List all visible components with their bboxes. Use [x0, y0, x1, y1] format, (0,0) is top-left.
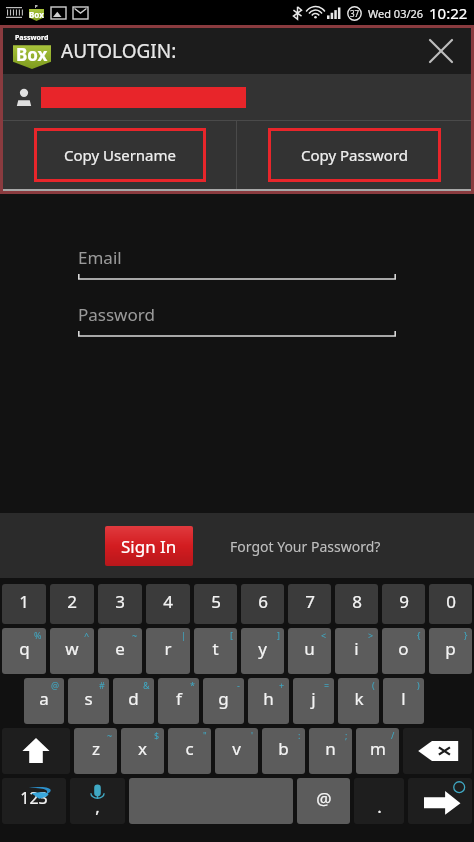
button[interactable]: Sign In — [105, 526, 193, 566]
staticText: f — [176, 687, 182, 710]
button[interactable]: 2 — [50, 584, 94, 624]
staticText: l — [401, 687, 406, 710]
staticText: y — [258, 637, 267, 660]
staticText: u — [304, 637, 315, 660]
button[interactable]: + — [248, 678, 289, 724]
button[interactable]: $ — [121, 728, 164, 774]
button[interactable]: Password — [3, 28, 471, 74]
staticText: 0 — [446, 590, 456, 613]
staticText: # — [99, 679, 105, 691]
staticText: } — [464, 629, 468, 641]
button[interactable]: < — [288, 628, 331, 674]
button[interactable]: & — [113, 678, 154, 724]
button[interactable]: - — [203, 678, 244, 724]
staticText: ] — [277, 629, 280, 641]
button[interactable]: 4 — [146, 584, 190, 624]
staticText: 4 — [163, 590, 173, 613]
staticText: ~ — [132, 629, 138, 641]
button[interactable]: " — [168, 728, 211, 774]
button[interactable]: @ — [24, 678, 64, 724]
staticText: < — [321, 629, 327, 641]
staticText: 123 — [20, 787, 48, 809]
staticText: Box — [29, 9, 44, 20]
button[interactable]: # — [68, 678, 109, 724]
button[interactable]: ( — [338, 678, 379, 724]
button[interactable]: | — [146, 628, 190, 674]
button[interactable]: 3 — [98, 584, 142, 624]
button[interactable]: / — [356, 728, 399, 774]
button[interactable]: > — [335, 628, 378, 674]
staticText: 6 — [258, 590, 268, 613]
staticText: b — [278, 737, 289, 760]
staticText: w — [65, 637, 79, 660]
staticText: 7 — [305, 590, 315, 613]
button[interactable]: Copy Password — [237, 121, 471, 189]
staticText: . — [377, 795, 382, 818]
button[interactable]: 9 — [382, 584, 425, 624]
staticText: 8 — [352, 590, 362, 613]
button[interactable]: 6 — [241, 584, 284, 624]
button[interactable]: ~ — [74, 728, 117, 774]
staticText: c — [185, 737, 194, 760]
button[interactable]: 0 — [429, 584, 472, 624]
staticText: Copy Password — [301, 145, 408, 165]
button[interactable]: [ — [194, 628, 237, 674]
button[interactable]: back — [403, 728, 472, 774]
button[interactable]: shift — [2, 728, 70, 774]
staticText: 5 — [211, 590, 221, 613]
button[interactable]: ] — [241, 628, 284, 674]
staticText: h — [263, 687, 274, 710]
button[interactable] — [3, 74, 471, 120]
staticText: ^ — [84, 629, 90, 641]
staticText: Password — [15, 33, 49, 43]
staticText: | — [181, 629, 186, 641]
staticText: { — [417, 629, 421, 641]
button[interactable]: Forgot Your Password? — [226, 533, 385, 560]
button[interactable]: ' — [215, 728, 258, 774]
button[interactable]: = — [293, 678, 334, 724]
staticText: o — [398, 637, 409, 660]
button[interactable]: 1 — [2, 584, 46, 624]
button[interactable]: . — [354, 778, 404, 824]
button[interactable]: % — [2, 628, 46, 674]
button[interactable]: 123 — [2, 778, 66, 824]
button[interactable]: * — [158, 678, 199, 724]
staticText: z — [92, 737, 100, 760]
staticText: 9 — [399, 590, 409, 613]
button[interactable]: , — [70, 778, 125, 824]
staticText: 37 — [350, 8, 360, 19]
button[interactable]: : — [262, 728, 305, 774]
staticText: AUTOLOGIN: — [61, 38, 177, 64]
staticText: p — [445, 637, 456, 660]
staticText: g — [218, 687, 229, 710]
staticText: n — [325, 737, 336, 760]
button[interactable]: ^ — [50, 628, 94, 674]
button[interactable]: ) — [383, 678, 424, 724]
staticText: k — [354, 687, 364, 710]
staticText: 10:22 — [429, 3, 468, 23]
staticText: x — [138, 737, 147, 760]
staticText: : — [298, 729, 301, 741]
staticText: i — [354, 637, 359, 660]
staticText: v — [232, 737, 241, 760]
staticText: ' — [251, 729, 254, 741]
button[interactable]: 5 — [194, 584, 237, 624]
button[interactable]: Copy Username — [3, 121, 236, 189]
staticText: q — [19, 637, 30, 660]
button[interactable]: @ — [297, 778, 350, 824]
button[interactable]: ~ — [98, 628, 142, 674]
staticText: Copy Username — [64, 145, 177, 165]
button[interactable]: } — [429, 628, 472, 674]
button[interactable]: ; — [309, 728, 352, 774]
staticText: P — [35, 4, 38, 9]
staticText: a — [39, 687, 49, 710]
button[interactable]: enter — [408, 778, 472, 824]
button[interactable]: { — [382, 628, 425, 674]
staticText: d — [128, 687, 139, 710]
staticText: " — [203, 729, 207, 741]
button[interactable]: 8 — [335, 584, 378, 624]
staticText: 1 — [19, 590, 29, 613]
button[interactable]: 7 — [288, 584, 331, 624]
button[interactable]: Close — [421, 31, 461, 71]
